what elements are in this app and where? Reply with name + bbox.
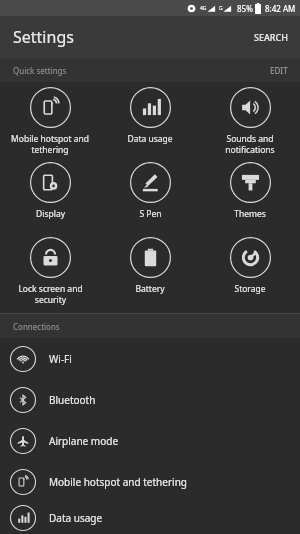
staticText: Data usage xyxy=(49,511,103,525)
button[interactable]: Data usage xyxy=(100,82,200,157)
staticText: 8:42 AM xyxy=(265,3,296,14)
staticText: Display xyxy=(36,208,65,220)
button[interactable]: Mobile hotspot and tethering xyxy=(0,461,300,502)
button[interactable]: Data usage xyxy=(0,502,300,534)
button[interactable]: Display xyxy=(0,157,100,232)
staticText: 85% xyxy=(237,3,253,14)
button[interactable]: Wi-Fi xyxy=(0,338,300,379)
button[interactable]: Themes xyxy=(200,157,300,232)
button[interactable]: Bluetooth xyxy=(0,379,300,420)
staticText: Connections xyxy=(13,321,60,332)
button[interactable]: Battery xyxy=(100,232,200,307)
staticText: Themes xyxy=(234,208,266,220)
staticText: S Pen xyxy=(139,208,162,220)
staticText: Mobile hotspot and tethering xyxy=(11,133,89,155)
button[interactable]: Storage xyxy=(200,232,300,307)
staticText: Bluetooth xyxy=(49,393,96,407)
staticText: Battery xyxy=(135,283,165,295)
button[interactable]: S Pen xyxy=(100,157,200,232)
staticText: Storage xyxy=(234,283,266,295)
staticText: Sounds and notifications xyxy=(225,133,275,155)
staticText: Wi-Fi xyxy=(49,352,72,366)
staticText: Data usage xyxy=(127,133,173,145)
staticText: Airplane mode xyxy=(49,434,119,448)
button[interactable]: SEARCH xyxy=(242,23,300,51)
staticText: Lock screen and security xyxy=(18,283,83,305)
button[interactable]: Airplane mode xyxy=(0,420,300,461)
staticText: EDIT xyxy=(270,65,288,76)
button[interactable]: EDIT xyxy=(258,60,300,81)
button[interactable]: Lock screen and security xyxy=(0,232,100,307)
staticText: G xyxy=(219,5,223,12)
staticText: SEARCH xyxy=(254,31,288,43)
staticText: Mobile hotspot and tethering xyxy=(49,475,187,489)
button[interactable]: Mobile hotspot and tethering xyxy=(0,82,100,157)
staticText: Quick settings xyxy=(13,65,67,76)
button[interactable]: Sounds and notifications xyxy=(200,82,300,157)
staticText: 4G xyxy=(200,5,207,12)
staticText: Settings xyxy=(13,26,74,48)
